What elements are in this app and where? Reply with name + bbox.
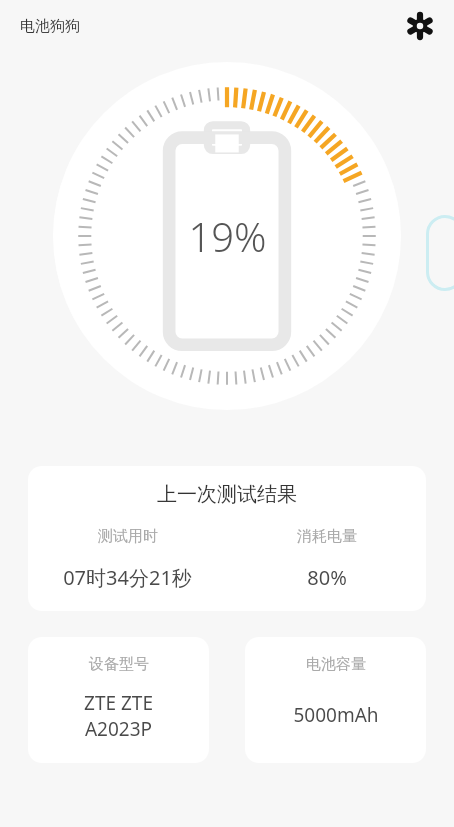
staticText: 电池狗狗 (20, 17, 80, 36)
button[interactable]: 设备型号 (28, 637, 209, 763)
staticText: ZTE ZTE A2023P (84, 690, 153, 742)
staticText: 测试用时 (98, 527, 158, 546)
staticText: 设备型号 (89, 655, 149, 674)
staticText: 消耗电量 (297, 527, 357, 546)
staticText: 19% (188, 209, 267, 263)
button[interactable]: Settings (402, 8, 438, 44)
staticText: 80% (307, 564, 347, 591)
staticText: 5000mAh (293, 702, 379, 728)
staticText: 07时34分21秒 (63, 564, 192, 591)
staticText: 电池容量 (306, 655, 366, 674)
button[interactable]: 上一次测试结果 (28, 466, 426, 611)
staticText: 上一次测试结果 (157, 482, 297, 507)
button[interactable]: 电池容量 (245, 637, 426, 763)
